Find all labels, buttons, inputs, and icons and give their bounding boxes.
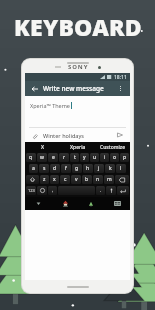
button[interactable]: Xperia <box>60 142 95 152</box>
button[interactable]: z <box>40 175 49 184</box>
button[interactable]: d <box>50 164 60 173</box>
button[interactable]: y <box>80 153 89 162</box>
button[interactable] <box>117 186 129 195</box>
staticText: p <box>123 154 127 161</box>
button[interactable]: n <box>93 175 103 184</box>
button[interactable] <box>26 175 39 184</box>
staticText: r <box>63 154 66 161</box>
staticText: j <box>98 165 100 172</box>
staticText: Customize <box>100 144 126 151</box>
button[interactable]: Xperia™ Theme <box>25 96 130 128</box>
button[interactable]: b <box>82 175 92 184</box>
button[interactable]: Winter holidays <box>43 128 115 142</box>
button[interactable]: Attach <box>30 131 39 140</box>
staticText: , <box>52 187 54 194</box>
staticText: h <box>86 165 90 172</box>
staticText: u <box>93 154 97 161</box>
staticText: . <box>100 187 102 194</box>
staticText: g <box>75 165 79 172</box>
staticText: b <box>85 176 89 183</box>
staticText: Write new message <box>43 84 104 93</box>
staticText: 18:11 <box>114 74 127 81</box>
staticText: c <box>64 176 67 183</box>
button[interactable]: l <box>116 164 126 173</box>
staticText: x <box>53 176 56 183</box>
staticText: y <box>83 154 86 161</box>
staticText: z <box>43 176 46 183</box>
button[interactable]: w <box>37 153 47 162</box>
button[interactable]: X <box>25 142 60 152</box>
button[interactable] <box>115 175 129 184</box>
staticText: Xperia <box>70 144 86 151</box>
button[interactable]: Write new message <box>43 81 115 96</box>
button[interactable]: t <box>70 153 79 162</box>
button[interactable]: Keyboard <box>104 197 130 210</box>
button[interactable]: Recents <box>78 197 104 210</box>
button[interactable]: s <box>39 164 49 173</box>
button[interactable]: q <box>26 153 36 162</box>
staticText: m <box>107 176 112 183</box>
button[interactable]: i <box>100 153 109 162</box>
button[interactable] <box>37 186 47 195</box>
button[interactable]: j <box>94 164 104 173</box>
button[interactable]: 123 <box>26 186 36 195</box>
button[interactable]: , <box>48 186 57 195</box>
button[interactable]: a <box>29 164 38 173</box>
button[interactable]: e <box>48 153 58 162</box>
staticText: SONY <box>68 63 89 71</box>
staticText: X <box>41 144 45 151</box>
staticText: Xperia™ Theme <box>30 102 70 109</box>
staticText: f <box>65 165 67 172</box>
staticText: 123 <box>28 188 35 193</box>
staticText: d <box>53 165 57 172</box>
button[interactable]: v <box>71 175 81 184</box>
button[interactable]: p <box>120 153 129 162</box>
staticText: l <box>120 165 122 172</box>
button[interactable]: k <box>105 164 115 173</box>
staticText: i <box>104 154 106 161</box>
staticText: k <box>109 165 112 172</box>
button[interactable]: c <box>60 175 70 184</box>
button[interactable] <box>106 186 116 195</box>
staticText: v <box>75 176 78 183</box>
button[interactable]: x <box>50 175 59 184</box>
button[interactable]: Send <box>115 130 125 140</box>
button[interactable]: r <box>59 153 69 162</box>
button[interactable]: g <box>72 164 82 173</box>
button[interactable]: u <box>90 153 99 162</box>
staticText: t <box>74 154 76 161</box>
staticText: o <box>113 154 117 161</box>
staticText: s <box>43 165 46 172</box>
button[interactable] <box>58 186 95 195</box>
staticText: KEYBOARD <box>14 11 142 42</box>
button[interactable]: More options <box>115 83 126 94</box>
button[interactable]: Back <box>25 197 52 210</box>
button[interactable]: Back <box>29 83 40 94</box>
staticText: w <box>40 154 44 161</box>
staticText: a <box>32 165 35 172</box>
staticText: Winter holidays <box>43 132 85 139</box>
staticText: e <box>52 154 55 161</box>
button[interactable]: f <box>61 164 71 173</box>
button[interactable]: Customize <box>95 142 130 152</box>
button[interactable]: Home <box>52 197 78 210</box>
staticText: q <box>29 154 33 161</box>
button[interactable]: h <box>83 164 93 173</box>
button[interactable]: . <box>96 186 105 195</box>
button[interactable]: o <box>110 153 119 162</box>
button[interactable]: m <box>104 175 114 184</box>
staticText: n <box>96 176 100 183</box>
